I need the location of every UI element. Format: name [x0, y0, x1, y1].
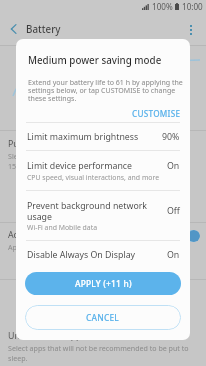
staticText: APPLY (+11 h): [75, 278, 132, 289]
staticText: Apply power saving modes automatically: [8, 242, 145, 252]
button[interactable]: Limit device performance: [16, 151, 190, 190]
staticText: CUSTOMISE: [132, 108, 181, 119]
staticText: 90%: [162, 131, 180, 143]
staticText: Adaptive power saving: [8, 229, 102, 241]
staticText: Prevent background network usage: [27, 200, 162, 222]
button[interactable]: CANCEL: [25, 305, 181, 330]
staticText: Unmonitored apps: [8, 330, 86, 342]
staticText: On: [167, 249, 180, 261]
button[interactable]: More options: [180, 13, 206, 45]
staticText: CANCEL: [86, 312, 120, 323]
button[interactable]: Navigate up: [0, 13, 26, 45]
staticText: Off: [167, 205, 180, 217]
staticText: 100%: [152, 1, 173, 12]
staticText: 10:00: [182, 1, 203, 12]
button[interactable]: Prevent background network usage: [16, 191, 190, 240]
staticText: Select apps that will not be recommended…: [8, 343, 200, 363]
staticText: Limit device performance: [27, 160, 162, 172]
staticText: Medium power saving mode: [28, 54, 162, 67]
staticText: Battery: [26, 23, 61, 36]
staticText: Extend your battery life to 61 h by appl…: [28, 77, 187, 103]
button[interactable]: APPLY (+11 h): [25, 272, 181, 295]
staticText: Disable Always On Display: [27, 249, 162, 261]
button[interactable]: Adaptive power saving: [0, 223, 206, 252]
button[interactable]: CUSTOMISE: [123, 107, 190, 120]
staticText: Wi-Fi and Mobile data: [27, 223, 98, 232]
button[interactable]: Unmonitored apps: [0, 330, 206, 363]
button[interactable]: Put unused apps to sleep: [0, 131, 206, 171]
button[interactable]: Limit maximum brightness: [16, 123, 190, 150]
button[interactable]: Toggle: [180, 230, 200, 242]
button[interactable]: Disable Always On Display: [16, 241, 190, 269]
staticText: On: [167, 160, 180, 172]
staticText: CPU speed, visual interactions, and more: [27, 173, 160, 182]
staticText: Sleeping apps won't run in the backgroun…: [8, 151, 154, 171]
staticText: Put unused apps to sleep: [8, 138, 113, 150]
staticText: Limit maximum brightness: [27, 131, 157, 143]
